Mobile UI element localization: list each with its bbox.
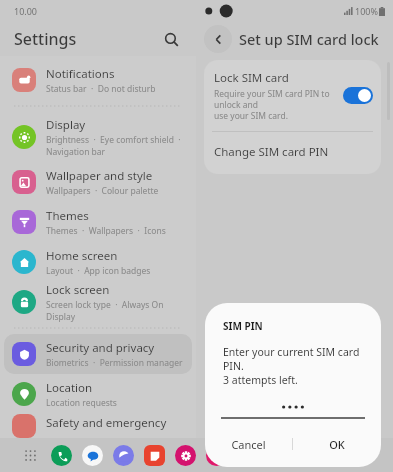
button[interactable]: Change SIM card PIN xyxy=(204,132,381,174)
button[interactable]: Recents xyxy=(275,445,295,465)
staticText: Lock SIM card xyxy=(214,70,289,86)
staticText: 100% xyxy=(355,5,378,17)
staticText: Navigation bar xyxy=(46,146,106,158)
button[interactable]: Internet xyxy=(113,445,134,466)
button[interactable]: Notes xyxy=(144,445,165,466)
button[interactable]: Cancel xyxy=(205,429,292,459)
staticText: Biometrics · Permission manager xyxy=(46,357,183,369)
button[interactable]: Home xyxy=(317,445,337,465)
button[interactable]: Home screen xyxy=(4,242,192,282)
button[interactable]: Safety and emergency xyxy=(0,414,196,438)
button[interactable]: Galaxy Store xyxy=(175,445,196,466)
button[interactable]: Back xyxy=(359,445,379,465)
staticText: Lock screen xyxy=(46,282,110,298)
staticText: Themes · Wallpapers · Icons xyxy=(46,225,166,237)
staticText: Brightness · Eye comfort shield · xyxy=(46,134,181,146)
button[interactable]: Notifications xyxy=(4,60,192,100)
button[interactable]: Lock SIM card xyxy=(204,60,381,131)
staticText: Home screen xyxy=(46,248,118,264)
staticText: Enter your current SIM card PIN. 3 attem… xyxy=(223,345,381,387)
button[interactable]: Search xyxy=(158,26,184,52)
staticText: Screen lock type · Always On Display xyxy=(46,299,192,322)
button[interactable]: Camera xyxy=(206,445,227,466)
staticText: Wallpaper and style xyxy=(46,168,153,184)
staticText: Cancel xyxy=(231,437,266,452)
staticText: SIM PIN xyxy=(223,319,263,333)
staticText: Settings xyxy=(14,28,77,50)
staticText: Set up SIM card lock xyxy=(239,29,379,49)
staticText: Location xyxy=(46,380,93,396)
button[interactable]: Location xyxy=(4,374,192,414)
button[interactable]: All apps xyxy=(24,449,37,462)
button[interactable]: Wallpaper and style xyxy=(4,162,192,202)
button[interactable]: Phone xyxy=(51,445,72,466)
button[interactable]: Lock screen xyxy=(4,282,192,322)
staticText: Themes xyxy=(46,208,89,224)
staticText: Security and privacy xyxy=(46,340,155,356)
button[interactable]: Display xyxy=(4,112,192,162)
button[interactable]: Themes xyxy=(4,202,192,242)
staticText: Display xyxy=(46,117,86,133)
staticText: Safety and emergency xyxy=(46,415,167,431)
staticText: Notifications xyxy=(46,66,115,82)
button[interactable]: Email xyxy=(242,445,263,466)
staticText: Status bar · Do not disturb xyxy=(46,83,156,95)
staticText: OK xyxy=(329,437,345,452)
staticText: Layout · App icon badges xyxy=(46,265,151,277)
button[interactable]: Back xyxy=(204,25,232,53)
staticText: 10.00 xyxy=(14,5,38,17)
button[interactable]: OK xyxy=(293,429,381,459)
staticText: Wallpapers · Colour palette xyxy=(46,185,159,197)
staticText: Change SIM card PIN xyxy=(214,144,329,160)
button[interactable]: Lock SIM card toggle xyxy=(343,87,373,104)
button[interactable]: Security and privacy xyxy=(4,334,192,374)
staticText: Require your SIM card PIN to unlock and … xyxy=(214,88,337,121)
staticText: Location requests xyxy=(46,397,117,409)
button[interactable]: Messages xyxy=(82,445,103,466)
